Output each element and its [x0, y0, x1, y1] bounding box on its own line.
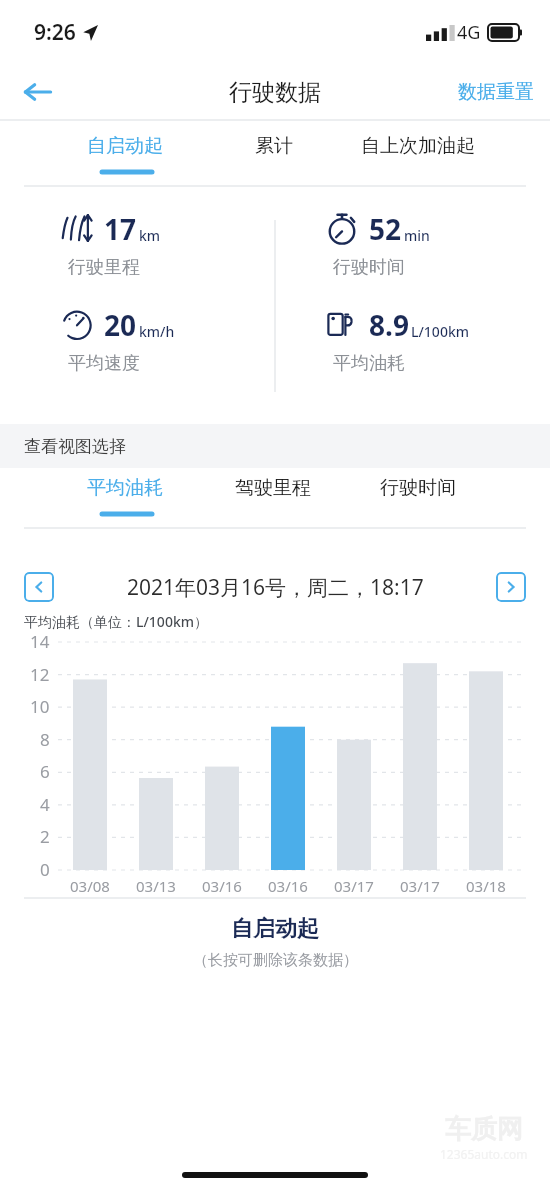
staticText: 03/13 — [136, 876, 176, 896]
staticText: 6 — [40, 760, 50, 783]
staticText: 03/17 — [334, 876, 374, 896]
button[interactable]: 自启动起 — [87, 134, 163, 158]
staticText: 03/16 — [202, 876, 242, 896]
staticText: 8 — [40, 728, 50, 751]
staticText: 17 — [104, 210, 137, 248]
staticText: 14 — [30, 630, 50, 653]
button[interactable]: Next — [496, 572, 526, 602]
button[interactable]: 平均油耗 — [87, 476, 163, 500]
staticText: 平均油耗（单位：L/100km） — [24, 612, 208, 631]
staticText: 03/16 — [268, 876, 308, 896]
button[interactable]: 数据重置 — [458, 80, 534, 104]
button[interactable]: 驾驶里程 — [235, 476, 311, 500]
button[interactable]: 行驶时间 — [380, 476, 456, 500]
staticText: 2021年03月16号，周二，18:17 — [127, 573, 424, 602]
staticText: 10 — [30, 695, 50, 718]
button[interactable]: 累计 — [255, 134, 293, 158]
staticText: 9:26 — [34, 18, 76, 47]
staticText: 平均油耗 — [333, 352, 405, 375]
staticText: 平均速度 — [68, 352, 140, 375]
staticText: 行驶时间 — [333, 256, 405, 279]
staticText: 52 — [369, 210, 402, 248]
staticText: 自上次加油起 — [361, 134, 475, 158]
staticText: 8.9 — [369, 306, 409, 344]
staticText: 03/17 — [400, 876, 440, 896]
button[interactable]: 自上次加油起 — [361, 134, 475, 158]
staticText: L/100km — [411, 322, 469, 341]
staticText: 累计 — [255, 134, 293, 158]
staticText: 车质网 — [445, 1113, 523, 1146]
staticText: 4 — [40, 793, 50, 816]
staticText: km — [139, 226, 161, 245]
staticText: km/h — [139, 322, 175, 341]
staticText: min — [404, 226, 430, 245]
staticText: 行驶里程 — [68, 256, 140, 279]
staticText: 03/18 — [466, 876, 506, 896]
button[interactable]: Back — [14, 68, 62, 116]
staticText: 4G — [457, 20, 481, 45]
staticText: 自启动起 — [231, 915, 319, 943]
staticText: 20 — [104, 306, 137, 344]
staticText: 自启动起 — [87, 134, 163, 158]
staticText: 数据重置 — [458, 80, 534, 104]
staticText: 行驶数据 — [229, 78, 321, 107]
staticText: 驾驶里程 — [235, 476, 311, 500]
button[interactable]: Previous — [24, 572, 54, 602]
staticText: 0 — [40, 858, 50, 881]
staticText: 2 — [40, 825, 50, 848]
staticText: 行驶时间 — [380, 476, 456, 500]
staticText: 12365auto.com — [440, 1146, 528, 1162]
staticText: 12 — [30, 663, 50, 686]
staticText: （长按可删除该条数据） — [193, 951, 358, 970]
staticText: 平均油耗 — [87, 476, 163, 500]
staticText: 03/08 — [70, 876, 110, 896]
staticText: 查看视图选择 — [24, 436, 126, 457]
